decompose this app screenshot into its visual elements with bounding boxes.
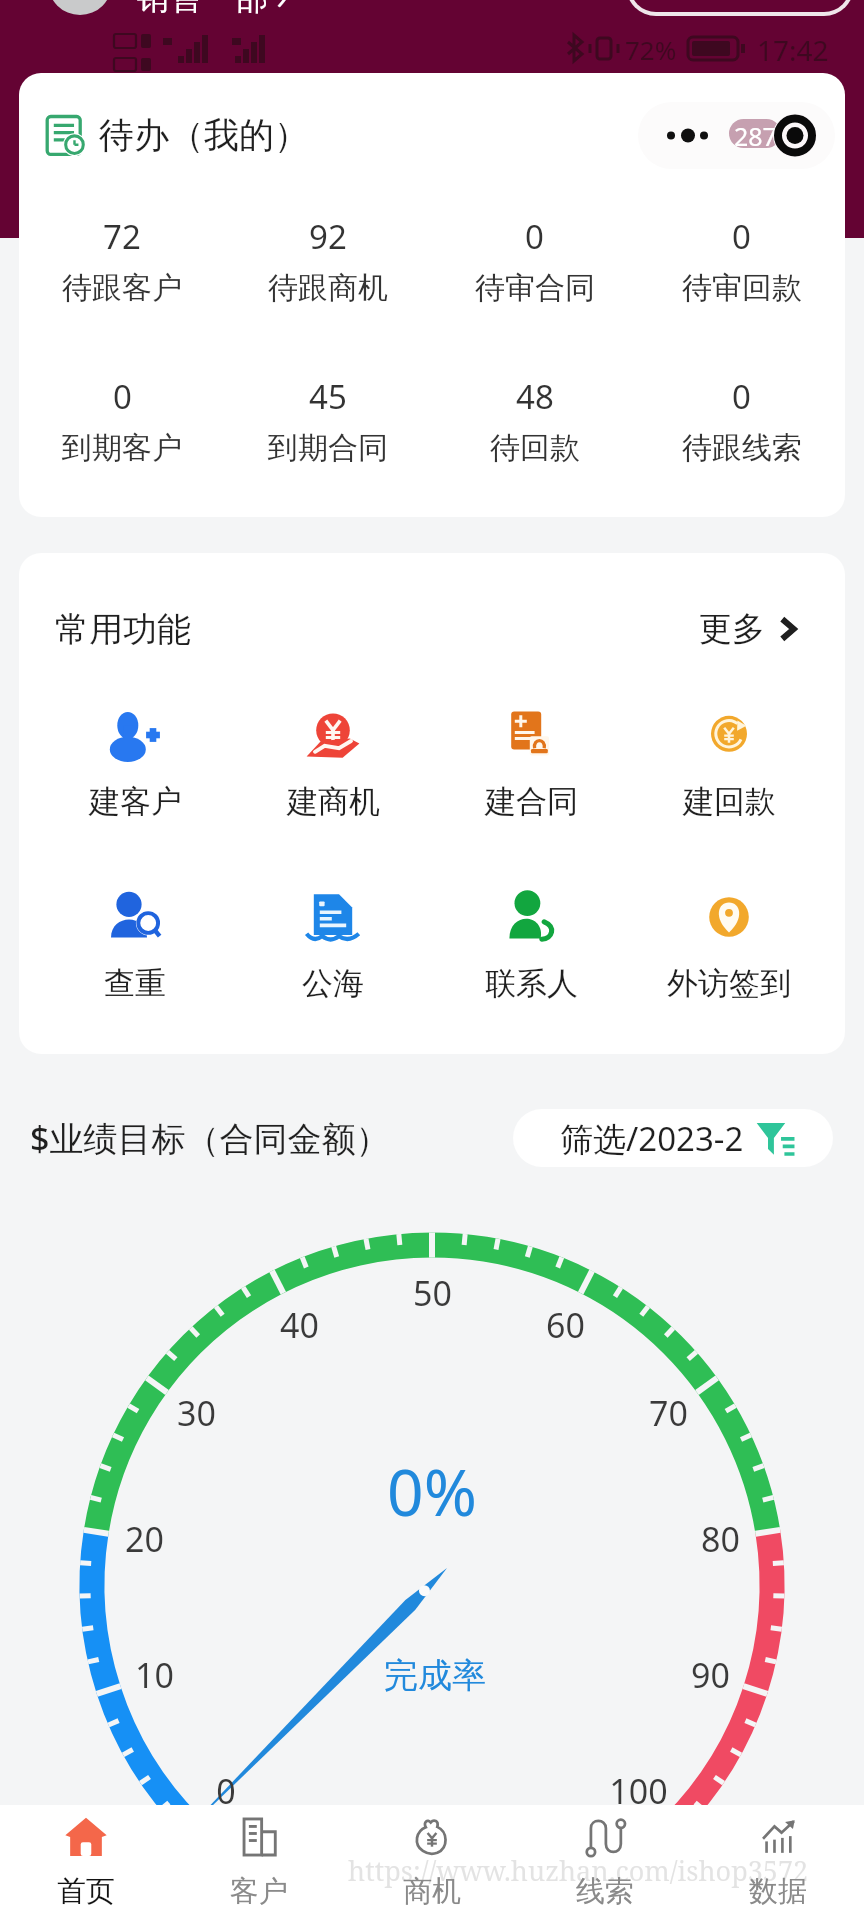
button[interactable]: 商机 [345,1805,518,1920]
button[interactable]: 0 [638,374,845,467]
staticText: 45 [309,374,347,419]
button[interactable]: 线索 [518,1805,691,1920]
staticText: 0 [732,214,751,259]
staticText: 待跟商机 [268,269,388,307]
button[interactable]: 建合同 [432,705,630,821]
button[interactable]: 外访签到 [630,887,828,1003]
staticText: 待跟线索 [682,429,802,467]
button[interactable]: More [638,102,835,169]
staticText: 待跟客户 [62,269,182,307]
staticText: 80 [701,1516,740,1562]
staticText: https://www.huzhan.com/ishop3572 [348,1852,809,1889]
staticText: 联系人 [485,964,578,1003]
staticText: 数据 [749,1873,807,1910]
staticText: 外访签到 [667,964,791,1003]
staticText: 20 [125,1516,164,1562]
staticText: 客户 [230,1873,288,1910]
staticText: 287 [734,119,777,148]
staticText: 0 [113,374,132,419]
staticText: 建回款 [683,782,776,821]
staticText: 建商机 [287,782,380,821]
button[interactable]: 92 [225,214,431,307]
staticText: 商机 [403,1873,461,1910]
staticText: 72 [103,214,141,259]
staticText: $业绩目标（合同金额） [30,1115,390,1161]
staticText: 线索 [576,1873,634,1910]
staticText: 建客户 [89,782,182,821]
staticText: 70 [649,1390,688,1436]
button[interactable]: 0 [638,214,845,307]
button[interactable]: 数据 [691,1805,864,1920]
button[interactable]: 0 [431,214,638,307]
staticText: 到期客户 [62,429,182,467]
button[interactable]: 联系人 [432,887,630,1003]
staticText: 40 [280,1302,319,1348]
staticText: 建合同 [485,782,578,821]
staticText: 0 [525,214,544,259]
staticText: 90 [691,1652,730,1698]
staticText: 完成率 [384,1654,486,1697]
button[interactable]: 72 [19,214,225,307]
button[interactable]: 更多 [699,608,801,650]
button[interactable]: 查重 [36,887,234,1003]
button[interactable]: 首页 [0,1805,172,1920]
button[interactable]: 公海 [234,887,432,1003]
staticText: 0% [387,1448,477,1522]
button[interactable]: 建商机 [234,705,432,821]
staticText: 待回款 [490,429,580,467]
button[interactable]: 45 [225,374,431,467]
staticText: 48 [516,374,554,419]
staticText: 到期合同 [268,429,388,467]
staticText: 销售一部 › [136,0,287,19]
staticText: 72% [625,32,677,67]
staticText: 0 [216,1768,236,1814]
staticText: 待办（我的） [99,113,309,157]
staticText: 0 [732,374,751,419]
staticText: 10 [135,1652,174,1698]
button[interactable]: 48 [431,374,638,467]
staticText: 首页 [57,1873,115,1910]
staticText: 查重 [104,964,166,1003]
staticText: 更多 [699,608,765,650]
button[interactable]: 0 [19,374,225,467]
staticText: 100 [609,1768,668,1814]
staticText: 30 [177,1390,216,1436]
button[interactable]: 筛选/2023-2 [513,1109,833,1167]
staticText: 待审合同 [475,269,595,307]
staticText: 60 [546,1302,585,1348]
staticText: 50 [413,1270,452,1316]
button[interactable]: 建客户 [36,705,234,821]
staticText: 17:42 [757,31,829,69]
button[interactable]: 建回款 [630,705,828,821]
staticText: 待审回款 [682,269,802,307]
staticText: 92 [309,214,347,259]
staticText: 公海 [302,964,364,1003]
staticText: 常用功能 [55,608,191,651]
staticText: 筛选/2023-2 [560,1116,744,1161]
button[interactable]: 客户 [172,1805,345,1920]
